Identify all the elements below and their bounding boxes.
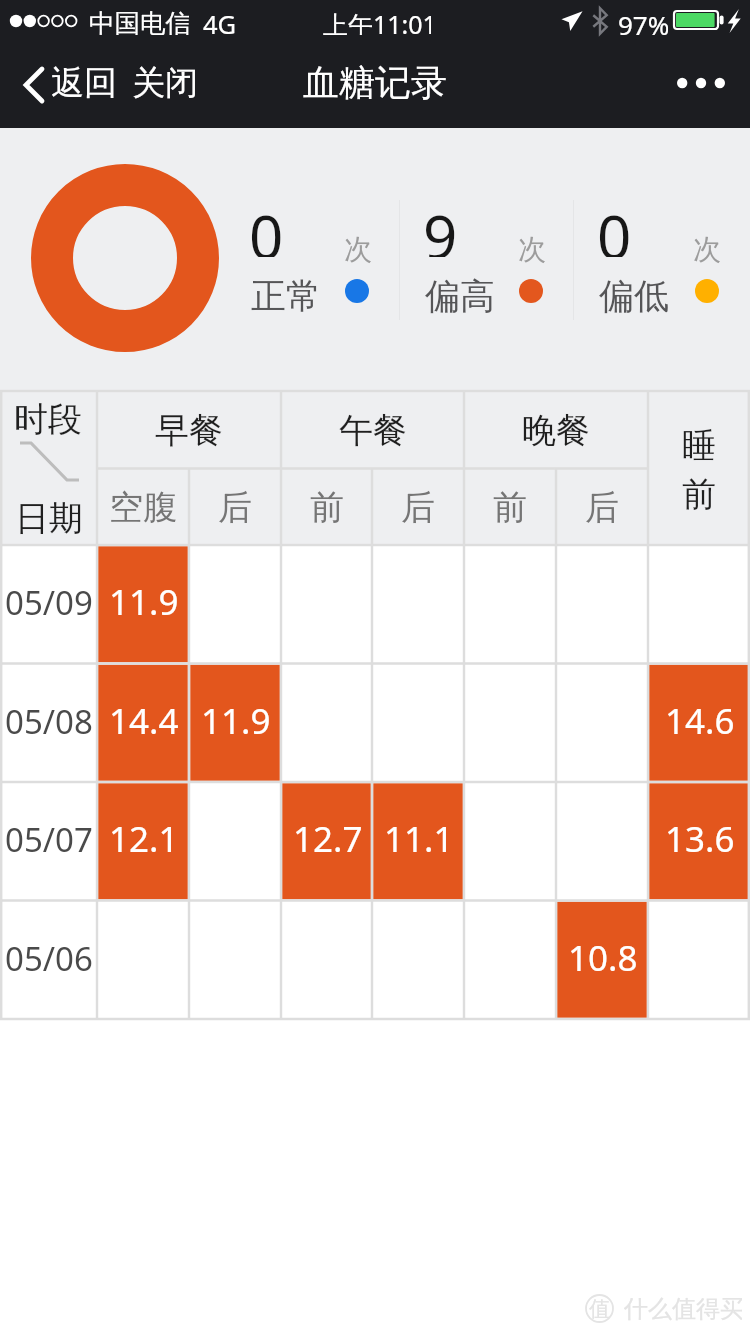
staticText: 0: [597, 195, 632, 257]
staticText: 13.6: [665, 815, 735, 863]
button[interactable]: 10.8: [556, 901, 648, 1020]
staticText: 9: [423, 195, 458, 257]
button[interactable]: 13.6: [648, 782, 750, 901]
staticText: 11.9: [201, 697, 271, 745]
staticText: 返回: [51, 62, 117, 104]
button[interactable]: More options: [658, 52, 743, 114]
staticText: 10.8: [568, 934, 638, 982]
staticText: 早餐: [155, 409, 223, 452]
staticText: 4G: [203, 7, 237, 35]
button[interactable]: 关闭: [128, 48, 204, 108]
staticText: 偏高: [425, 274, 495, 314]
button[interactable]: 14.4: [97, 664, 189, 783]
staticText: 日期: [15, 497, 83, 535]
button[interactable]: 14.6: [648, 664, 750, 783]
staticText: 时段: [14, 398, 82, 436]
staticText: 偏低: [599, 274, 669, 314]
button[interactable]: 12.7: [281, 782, 372, 901]
staticText: 12.7: [293, 815, 363, 863]
staticText: 05/08: [5, 699, 93, 744]
staticText: 中国电信: [89, 7, 189, 35]
staticText: 午餐: [339, 409, 407, 452]
staticText: 前: [310, 486, 344, 529]
button[interactable]: 9: [424, 196, 574, 316]
staticText: 05/06: [5, 936, 93, 981]
staticText: 上午11:01: [323, 7, 431, 35]
staticText: 后: [218, 486, 252, 529]
staticText: 05/09: [5, 580, 93, 625]
staticText: 97%: [618, 7, 668, 35]
staticText: 正常: [251, 274, 321, 314]
staticText: 后: [401, 486, 435, 529]
staticText: 次: [344, 232, 372, 264]
staticText: 血糖记录: [303, 60, 447, 100]
button[interactable]: 0: [250, 196, 400, 316]
staticText: 0: [249, 195, 284, 257]
staticText: 前: [493, 486, 527, 529]
staticText: 14.6: [665, 697, 735, 745]
staticText: 11.9: [109, 578, 179, 626]
staticText: 空腹: [109, 486, 177, 529]
staticText: 14.4: [109, 697, 179, 745]
staticText: 11.1: [384, 815, 454, 863]
staticText: 后: [585, 486, 619, 529]
staticText: 晚餐: [522, 409, 590, 452]
button[interactable]: 11.9: [189, 664, 281, 783]
button[interactable]: 11.9: [97, 545, 189, 664]
staticText: 睡 前: [682, 424, 716, 516]
button[interactable]: 11.1: [372, 782, 464, 901]
staticText: 关闭: [132, 62, 198, 104]
button[interactable]: 返回: [8, 48, 128, 108]
staticText: 次: [693, 232, 721, 264]
staticText: 什么值得买: [624, 1294, 742, 1323]
button[interactable]: 0: [598, 196, 748, 316]
staticText: 05/07: [5, 817, 93, 862]
staticText: 次: [518, 232, 546, 264]
staticText: 值: [589, 1296, 610, 1322]
staticText: 12.1: [109, 815, 179, 863]
button[interactable]: 12.1: [97, 782, 189, 901]
